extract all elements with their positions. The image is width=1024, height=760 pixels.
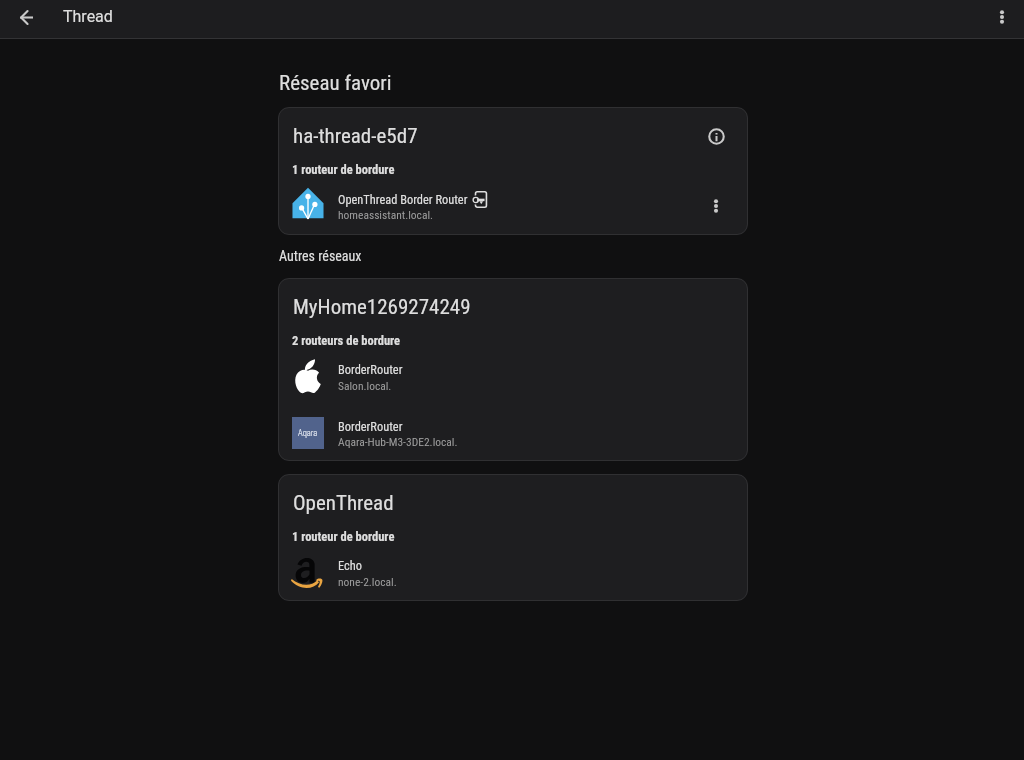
staticText: BorderRouter — [338, 419, 403, 434]
staticText: ha-thread-e5d7 — [293, 124, 418, 149]
button[interactable]: Network info — [703, 123, 729, 149]
staticText: OpenThread Border Router — [338, 192, 468, 207]
staticText: Echo — [338, 558, 362, 573]
button[interactable]: MyHome1269274249 — [278, 278, 748, 461]
staticText: Autres réseaux — [279, 248, 362, 264]
staticText: Réseau favori — [279, 71, 392, 96]
staticText: Aqara — [298, 428, 318, 438]
button[interactable] — [286, 549, 740, 591]
button[interactable] — [286, 182, 740, 224]
staticText: BorderRouter — [338, 362, 403, 377]
staticText: homeassistant.local. — [338, 208, 434, 221]
button[interactable]: Back — [8, 0, 42, 34]
button[interactable]: OpenThread — [278, 474, 748, 601]
button[interactable] — [286, 353, 740, 395]
staticText: 1 routeur de bordure — [292, 162, 395, 177]
button[interactable]: ha-thread-e5d7 — [278, 107, 748, 235]
staticText: Salon.local. — [338, 379, 392, 392]
button[interactable] — [286, 410, 740, 452]
staticText: 2 routeurs de bordure — [292, 333, 401, 348]
staticText: Aqara-Hub-M3-3DE2.local. — [338, 435, 458, 448]
staticText: Thread — [63, 7, 113, 26]
staticText: OpenThread — [293, 491, 394, 516]
button[interactable]: More options — [987, 2, 1017, 32]
staticText: none-2.local. — [338, 575, 397, 588]
staticText: 1 routeur de bordure — [292, 529, 395, 544]
staticText: MyHome1269274249 — [293, 295, 471, 320]
button[interactable]: Router options — [703, 193, 729, 219]
